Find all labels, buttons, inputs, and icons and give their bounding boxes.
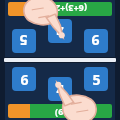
staticText: 6 [20, 70, 29, 89]
staticText: 5 [19, 31, 28, 50]
button[interactable]: 5 [84, 67, 108, 91]
button[interactable]: 5 [12, 29, 36, 53]
button[interactable]: 4 [48, 77, 72, 101]
staticText: 4 [55, 21, 64, 40]
staticText: 4 [56, 80, 65, 99]
button[interactable]: (6+3)+2 [8, 2, 112, 16]
staticText: (6+3)+2 [55, 105, 87, 117]
button[interactable]: 4 [48, 19, 72, 43]
button[interactable]: (6+3)+2 [8, 104, 112, 118]
staticText: 9 [91, 31, 100, 50]
button[interactable]: 6 [12, 67, 36, 91]
button[interactable]: 9 [84, 29, 108, 53]
staticText: (6+3)+2 [55, 3, 87, 15]
staticText: 5 [92, 70, 101, 89]
